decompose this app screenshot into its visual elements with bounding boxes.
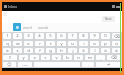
staticText: ↵	[107, 62, 111, 67]
button[interactable]: f	[35, 48, 44, 53]
button[interactable]: a	[3, 48, 11, 53]
staticText: ä	[115, 48, 118, 53]
button[interactable]: ?123	[18, 62, 32, 67]
button[interactable]: ↵	[96, 62, 121, 67]
staticText: g	[49, 48, 52, 53]
button[interactable]: 0	[101, 33, 110, 39]
button[interactable]: ä	[112, 48, 121, 53]
button[interactable]: 7	[68, 33, 77, 39]
button[interactable]: n	[74, 55, 83, 60]
staticText: x	[33, 55, 36, 60]
staticText: j	[72, 48, 74, 53]
button[interactable]: k	[79, 48, 88, 53]
button[interactable]: g	[46, 48, 55, 53]
staticText: 7	[71, 33, 74, 39]
button[interactable]: ⌫	[107, 55, 121, 60]
button[interactable]: u	[68, 41, 77, 46]
staticText: ?123	[22, 63, 28, 66]
button[interactable]: 3	[24, 33, 33, 39]
staticText: ,	[100, 55, 102, 60]
staticText: ⇧	[8, 55, 12, 60]
staticText: ⌫	[114, 34, 120, 39]
button[interactable]: 4	[35, 33, 44, 39]
button[interactable]: j	[68, 48, 77, 53]
button[interactable]: h	[57, 48, 66, 53]
button[interactable]: e	[24, 41, 33, 46]
button[interactable]: 1	[3, 33, 11, 39]
button[interactable]: m	[85, 55, 94, 60]
staticText: 4	[38, 33, 41, 39]
button[interactable]: r	[35, 41, 44, 46]
button[interactable]: ü	[112, 41, 121, 46]
staticText: 1	[6, 33, 9, 39]
staticText: s	[16, 48, 19, 53]
button[interactable]: ☺	[3, 62, 16, 67]
staticText: o	[93, 41, 96, 46]
staticText: ü	[115, 41, 118, 46]
staticText: words	[38, 25, 49, 30]
staticText: e	[27, 41, 30, 46]
staticText: 3	[27, 33, 30, 39]
staticText: v	[55, 55, 58, 60]
button[interactable]: 6	[57, 33, 66, 39]
button[interactable]: 8	[79, 33, 88, 39]
staticText: h	[60, 48, 63, 53]
staticText: a	[6, 48, 9, 53]
staticText: word	[23, 25, 32, 30]
button[interactable]: y	[57, 41, 66, 46]
button[interactable]: d	[24, 48, 33, 53]
button[interactable]: v	[52, 55, 61, 60]
staticText: 0	[104, 33, 107, 39]
staticText: m	[88, 55, 92, 60]
staticText: e	[16, 24, 19, 31]
button[interactable]: 2	[13, 33, 22, 39]
staticText: c	[44, 55, 47, 60]
button[interactable]: w	[13, 41, 22, 46]
button[interactable]: 9	[90, 33, 99, 39]
staticText: 9	[93, 33, 96, 39]
button[interactable]: ⇧	[3, 55, 17, 60]
staticText: f	[39, 48, 41, 53]
button[interactable]: ⌫	[112, 33, 121, 39]
button[interactable]: c	[41, 55, 50, 60]
staticText: k	[82, 48, 85, 53]
staticText: ☺	[7, 62, 12, 67]
staticText: 5	[49, 33, 52, 39]
staticText: ö	[104, 48, 107, 53]
button[interactable]: ö	[101, 48, 110, 53]
button[interactable]: 5	[46, 33, 55, 39]
staticText: 6	[60, 33, 63, 39]
button[interactable]: p	[101, 41, 110, 46]
staticText: p	[104, 41, 107, 46]
staticText: d	[27, 48, 30, 53]
staticText: w	[16, 41, 20, 46]
staticText: l	[94, 48, 96, 53]
button[interactable]: ,	[96, 55, 105, 60]
staticText: r	[39, 41, 41, 46]
staticText: b	[66, 55, 69, 60]
staticText: i	[83, 41, 85, 46]
staticText: 2	[16, 33, 19, 39]
staticText: Inbox	[8, 4, 18, 9]
staticText: .	[87, 62, 89, 67]
button[interactable]: o	[90, 41, 99, 46]
button[interactable]: x	[30, 55, 39, 60]
button[interactable]: b	[63, 55, 72, 60]
button[interactable]: i	[79, 41, 88, 46]
staticText: y	[22, 55, 25, 60]
staticText: 8	[82, 33, 85, 39]
staticText: ⌫	[111, 55, 117, 60]
button[interactable]: Next	[102, 16, 115, 22]
staticText: y	[60, 41, 63, 46]
button[interactable]: t	[46, 41, 55, 46]
button[interactable]: q	[3, 41, 11, 46]
button[interactable]: s	[13, 48, 22, 53]
staticText: q	[6, 41, 9, 46]
button[interactable]: l	[90, 48, 99, 53]
staticText: t	[50, 41, 52, 46]
staticText: Next	[105, 17, 112, 21]
button[interactable]: y	[19, 55, 28, 60]
staticText: n	[77, 55, 80, 60]
